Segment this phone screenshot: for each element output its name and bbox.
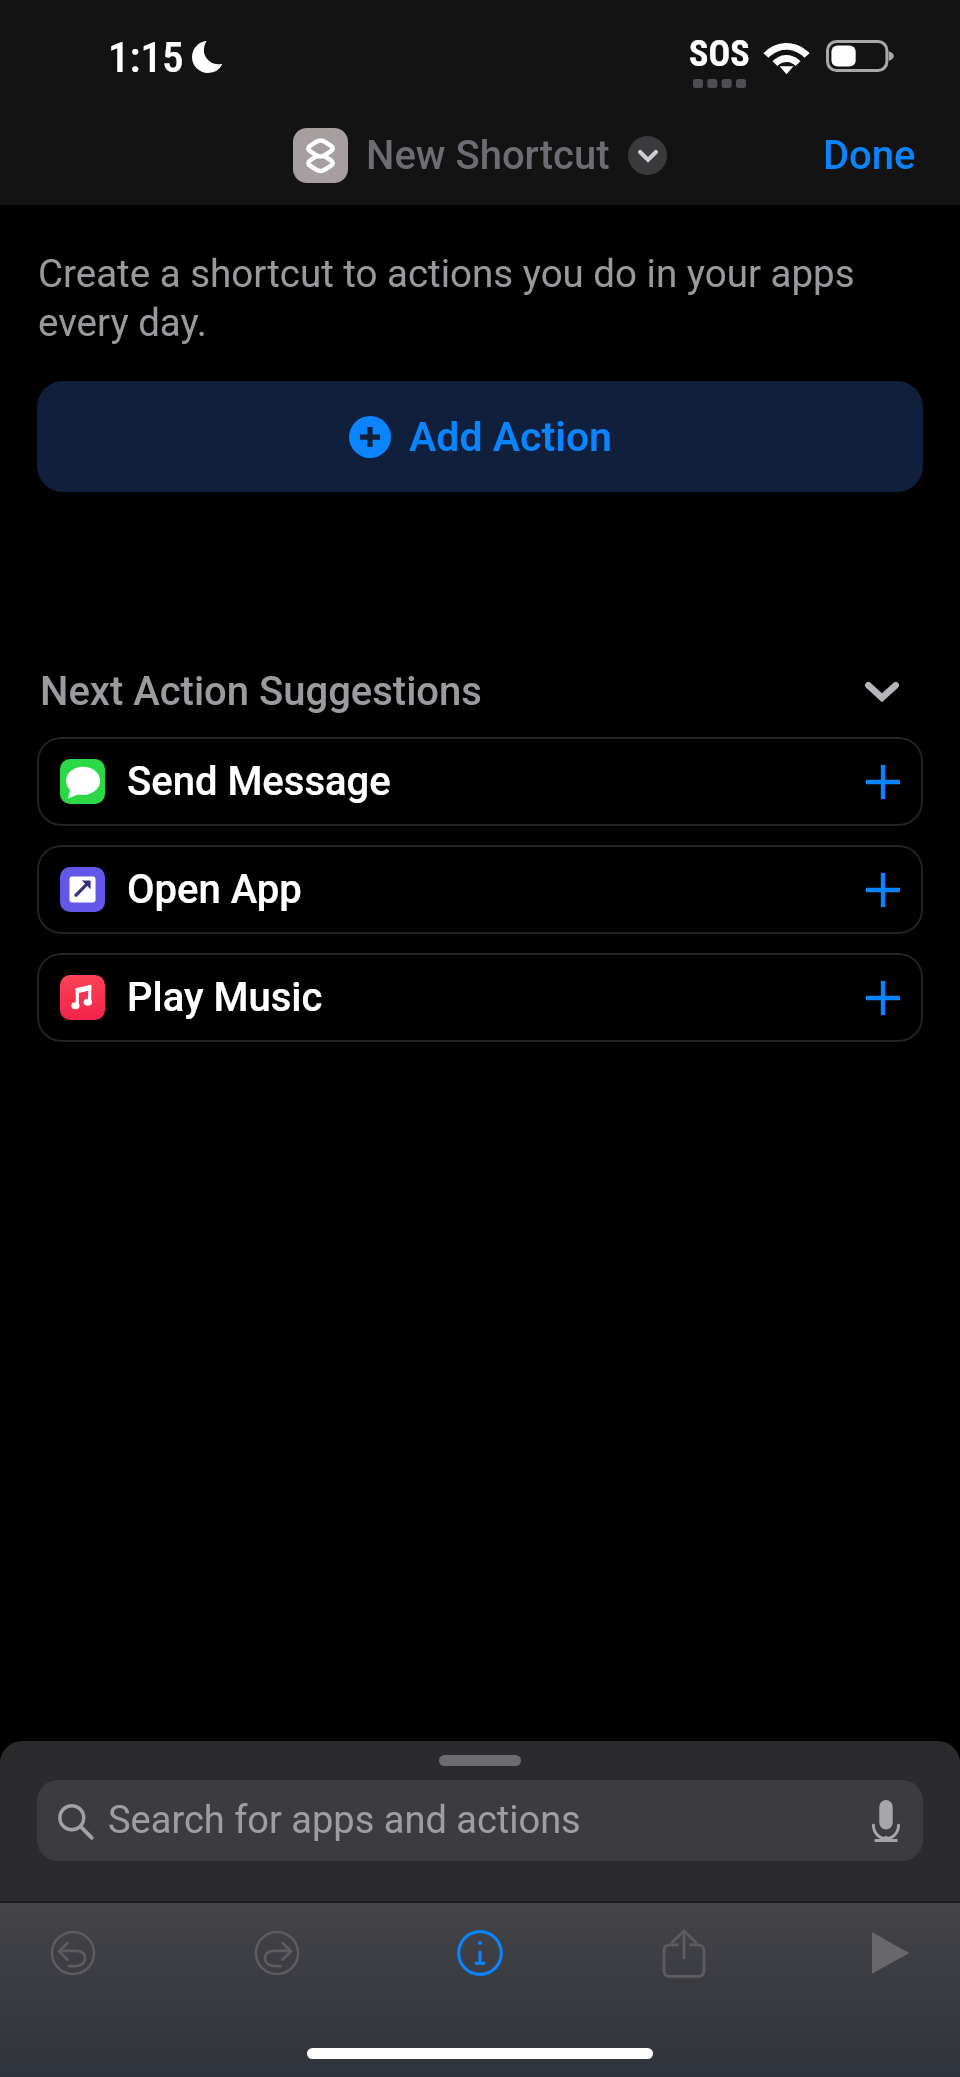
button[interactable]: Dictate bbox=[855, 1780, 917, 1861]
staticText: Add Action bbox=[409, 413, 612, 461]
staticText: New Shortcut bbox=[366, 132, 610, 179]
button[interactable]: Add Open App bbox=[850, 857, 916, 923]
staticText: Create a shortcut to actions you do in y… bbox=[38, 251, 926, 345]
button[interactable]: Add Send Message bbox=[850, 749, 916, 815]
button[interactable]: Add Play Music bbox=[850, 965, 916, 1031]
button[interactable]: Send Message bbox=[37, 737, 923, 826]
button[interactable]: Undo bbox=[27, 1903, 119, 2003]
button[interactable]: Done bbox=[823, 132, 916, 179]
button[interactable]: Play Music bbox=[37, 953, 923, 1042]
button[interactable]: Add Action bbox=[37, 381, 923, 492]
button[interactable]: Share bbox=[638, 1903, 730, 2003]
staticText: Search for apps and actions bbox=[108, 1798, 581, 1843]
button[interactable]: New Shortcut bbox=[293, 128, 667, 183]
staticText: Done bbox=[823, 132, 916, 179]
staticText: Play Music bbox=[127, 974, 323, 1021]
staticText: Next Action Suggestions bbox=[40, 668, 482, 715]
staticText: SOS bbox=[689, 33, 750, 75]
staticText: Open App bbox=[127, 866, 302, 913]
button[interactable]: Search for apps and actions bbox=[37, 1780, 923, 1861]
button[interactable]: Details bbox=[434, 1903, 526, 2003]
staticText: 1:15 bbox=[108, 32, 184, 82]
button[interactable]: Open App bbox=[37, 845, 923, 934]
button[interactable]: Next Action Suggestions bbox=[40, 666, 899, 716]
button[interactable]: Run bbox=[841, 1903, 933, 2003]
button[interactable]: Redo bbox=[231, 1903, 323, 2003]
staticText: Send Message bbox=[127, 758, 391, 805]
